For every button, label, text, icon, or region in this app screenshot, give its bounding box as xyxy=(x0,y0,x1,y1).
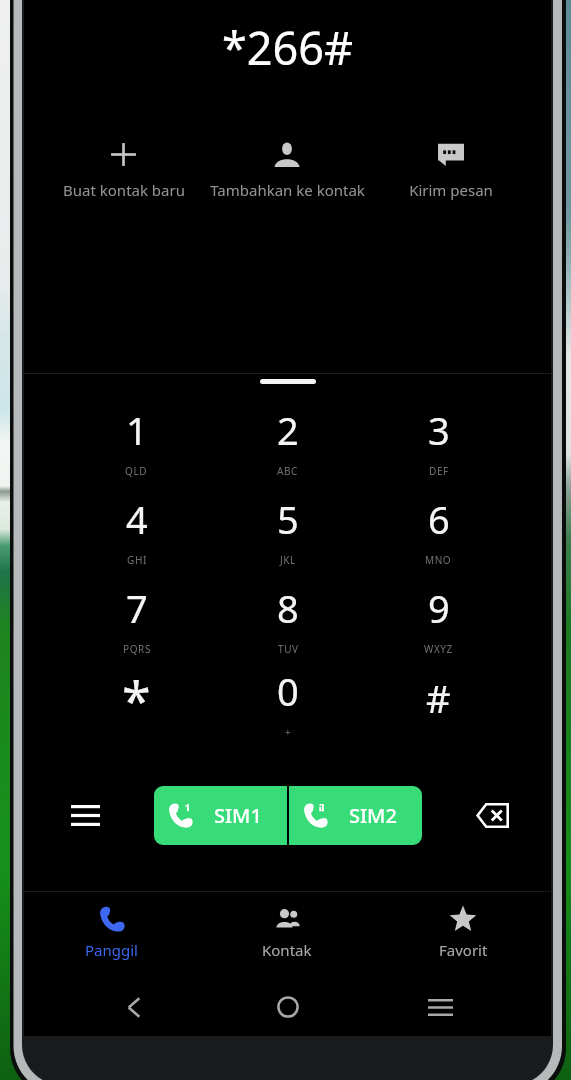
staticText: * xyxy=(122,664,151,735)
button[interactable]: Panggil xyxy=(24,889,199,979)
button[interactable]: Recent apps xyxy=(406,979,474,1035)
staticText: 8 xyxy=(277,582,299,634)
staticText: Panggil xyxy=(85,940,138,960)
button[interactable]: # xyxy=(363,663,514,752)
staticText: SIM1 xyxy=(214,802,262,829)
button[interactable]: 1 xyxy=(61,396,212,485)
button[interactable]: Back xyxy=(100,979,168,1035)
staticText: 1 xyxy=(126,404,148,456)
staticText: 6 xyxy=(428,493,450,545)
button[interactable]: 2 xyxy=(212,396,363,485)
staticText: Kirim pesan xyxy=(409,180,493,200)
staticText: TUV xyxy=(278,642,299,656)
button[interactable]: 5 xyxy=(212,485,363,574)
staticText: PQRS xyxy=(123,642,151,656)
button[interactable]: Keypad options xyxy=(50,780,120,850)
staticText: 2 xyxy=(277,404,299,456)
staticText: DEF xyxy=(429,464,449,478)
staticText: *266# xyxy=(222,17,354,78)
staticText: MNO xyxy=(425,553,452,567)
staticText: 7 xyxy=(126,582,148,634)
button[interactable]: 4 xyxy=(61,485,212,574)
button[interactable]: SIM1 xyxy=(154,786,287,845)
staticText: 9 xyxy=(428,582,450,634)
staticText: Kontak xyxy=(262,940,312,960)
staticText: QLD xyxy=(125,464,148,478)
button[interactable]: 8 xyxy=(212,574,363,663)
staticText: # xyxy=(426,672,451,724)
button[interactable]: Backspace xyxy=(457,780,527,850)
button[interactable]: * xyxy=(61,663,212,752)
button[interactable]: Tambahkan ke kontak xyxy=(205,141,369,221)
staticText: 3 xyxy=(428,404,450,456)
button[interactable]: Kirim pesan xyxy=(369,141,533,221)
button[interactable]: 3 xyxy=(363,396,514,485)
staticText: ABC xyxy=(277,464,299,478)
staticText: WXYZ xyxy=(424,642,453,656)
staticText: Favorit xyxy=(439,940,488,960)
staticText: 5 xyxy=(277,493,299,545)
button[interactable]: 6 xyxy=(363,485,514,574)
staticText: GHI xyxy=(127,553,147,567)
button[interactable]: Home xyxy=(254,979,322,1035)
staticText: JKL xyxy=(280,553,296,567)
button[interactable]: 9 xyxy=(363,574,514,663)
button[interactable]: Buat kontak baru xyxy=(42,141,205,221)
staticText: SIM2 xyxy=(349,802,397,829)
button[interactable]: Favorit xyxy=(375,889,551,979)
button[interactable]: SIM2 xyxy=(289,786,422,845)
button[interactable]: Kontak xyxy=(199,889,375,979)
button[interactable]: 0 xyxy=(212,663,363,752)
staticText: Tambahkan ke kontak xyxy=(210,180,365,200)
staticText: 0 xyxy=(277,665,299,717)
button[interactable]: 7 xyxy=(61,574,212,663)
staticText: + xyxy=(285,725,292,739)
staticText: Buat kontak baru xyxy=(63,180,185,200)
staticText: 4 xyxy=(126,493,148,545)
